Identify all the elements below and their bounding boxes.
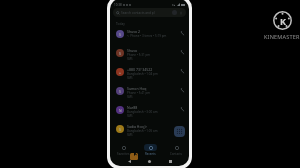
button[interactable]: Call bbox=[178, 48, 186, 56]
staticText: Recents bbox=[145, 152, 156, 156]
staticText: S bbox=[119, 51, 121, 56]
staticText: SMS bbox=[127, 114, 133, 118]
staticText: Nur88 bbox=[127, 105, 138, 110]
button[interactable]: + bbox=[110, 66, 189, 85]
staticText: 10:38 bbox=[114, 3, 122, 7]
staticText: Phone • 5:41 pm bbox=[127, 91, 151, 95]
staticText: Sumon Hoq bbox=[127, 86, 147, 91]
staticText: SMS bbox=[127, 133, 133, 137]
button[interactable]: S bbox=[110, 85, 189, 104]
button[interactable]: Dialpad bbox=[174, 126, 185, 137]
staticText: Bangladesh • 1:05 am bbox=[127, 129, 158, 133]
staticText: Sadia Hoq Jr bbox=[127, 124, 147, 129]
staticText: +880 73? 34522 bbox=[127, 67, 153, 72]
button[interactable]: S bbox=[110, 28, 189, 47]
staticText: Search contacts and pl bbox=[121, 11, 172, 15]
other: Home bbox=[148, 160, 151, 163]
staticText: SMS bbox=[127, 57, 133, 61]
staticText: Contacts bbox=[170, 152, 182, 156]
staticText: Favorites bbox=[117, 152, 130, 156]
staticText: + bbox=[119, 70, 121, 75]
button[interactable]: Search contacts and pl bbox=[113, 8, 186, 17]
staticText: K bbox=[280, 15, 286, 27]
button[interactable]: Favorites bbox=[110, 144, 137, 160]
staticText: ↖ Phone • 3 times • 5:19 pm bbox=[127, 34, 167, 38]
staticText: S bbox=[119, 32, 121, 37]
button[interactable]: Recents bbox=[137, 144, 163, 160]
staticText: Bangladesh • 3:00 am bbox=[127, 110, 158, 114]
button[interactable]: Contacts bbox=[163, 144, 189, 160]
button[interactable]: Account bbox=[172, 10, 177, 15]
staticText: Phone • 5:31 pm bbox=[127, 53, 151, 57]
button[interactable]: Call bbox=[178, 86, 186, 94]
staticText: ▾▴ bbox=[172, 3, 176, 6]
button[interactable]: More options bbox=[179, 11, 183, 15]
button[interactable]: Call bbox=[178, 124, 186, 132]
button[interactable]: S bbox=[110, 123, 189, 142]
staticText: KINEMASTER bbox=[264, 33, 300, 40]
staticText: Shuvo 2 bbox=[127, 29, 141, 34]
button[interactable]: Call bbox=[178, 67, 186, 75]
staticText: S bbox=[119, 127, 121, 132]
button[interactable]: Call bbox=[178, 105, 186, 113]
staticText: S bbox=[119, 89, 121, 94]
button[interactable]: S bbox=[110, 47, 189, 66]
staticText: SMS bbox=[127, 95, 133, 99]
staticText: Bangladesh • 1:04 pm bbox=[127, 72, 158, 76]
staticText: Today bbox=[116, 22, 125, 26]
button[interactable]: Call bbox=[178, 29, 186, 37]
staticText: N bbox=[119, 108, 122, 113]
button[interactable]: N bbox=[110, 104, 189, 123]
other: Back bbox=[128, 160, 131, 163]
staticText: Shuvo bbox=[127, 48, 138, 53]
staticText: SMS bbox=[127, 76, 133, 80]
